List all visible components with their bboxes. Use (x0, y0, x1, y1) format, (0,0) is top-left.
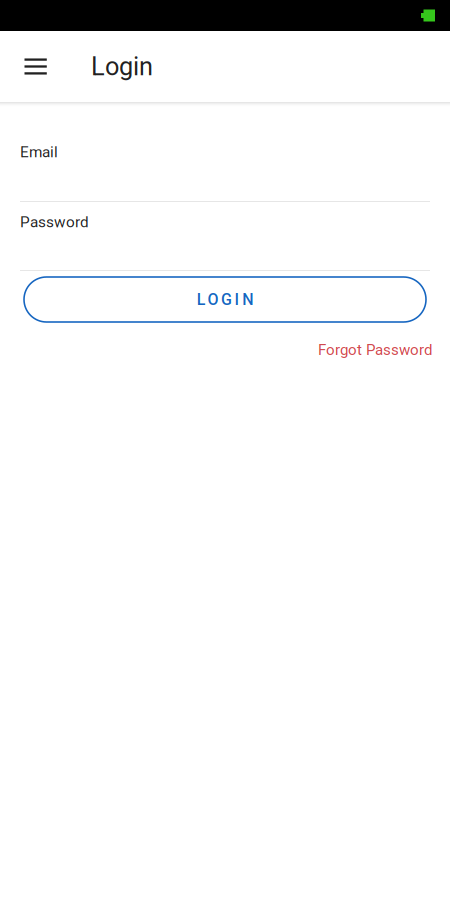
staticText: LOGIN (197, 290, 253, 309)
button[interactable]: Forgot Password (20, 322, 430, 357)
staticText: Email (20, 143, 58, 161)
button[interactable]: Open navigation menu (12, 42, 60, 90)
staticText: Forgot Password (318, 341, 432, 359)
staticText: Password (20, 213, 89, 231)
button[interactable]: LOGIN (20, 277, 430, 322)
staticText: Login (91, 52, 153, 81)
